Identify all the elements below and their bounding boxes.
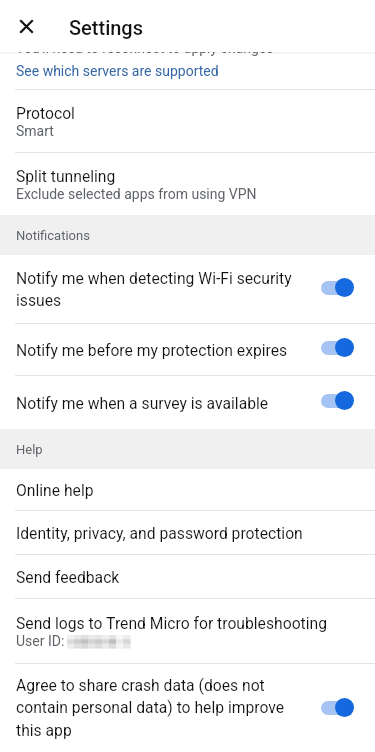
staticText: Send logs to Trend Micro for troubleshoo… (16, 614, 327, 632)
staticText: Send feedback (16, 568, 120, 586)
staticText: Settings (69, 16, 144, 39)
button[interactable]: Online help (0, 469, 375, 510)
button[interactable]: Close (2, 2, 50, 50)
staticText: Identity, privacy, and password protecti… (16, 524, 303, 542)
staticText: Online help (16, 481, 94, 499)
staticText: Split tunneling (16, 167, 116, 185)
button[interactable]: Protocol (0, 90, 375, 152)
staticText: Notify me when a survey is available (16, 394, 306, 412)
button[interactable]: Agree to share crash data (does not cont… (0, 664, 375, 752)
staticText: Exclude selected apps from using VPN (16, 186, 257, 202)
button[interactable]: Notify me before my protection expires (0, 324, 375, 375)
staticText: User ID: (16, 633, 65, 649)
staticText: Smart (16, 123, 54, 139)
button[interactable]: You'll need to reconnect to apply change… (0, 40, 375, 79)
button[interactable]: Send feedback (0, 555, 375, 598)
staticText: Notify me before my protection expires (16, 341, 306, 359)
button[interactable]: Split tunneling (0, 153, 375, 215)
button[interactable]: Identity, privacy, and password protecti… (0, 511, 375, 554)
button[interactable]: Notify me when detecting Wi-Fi security … (0, 255, 375, 323)
staticText: Notifications (16, 228, 90, 243)
staticText: You'll need to reconnect to apply change… (16, 40, 274, 56)
staticText: See which servers are supported (16, 63, 219, 79)
button[interactable]: Notify me when a survey is available (0, 376, 375, 429)
staticText: Agree to share crash data (does not cont… (16, 676, 306, 740)
button[interactable]: Send logs to Trend Micro for troubleshoo… (0, 599, 375, 663)
staticText: Help (16, 442, 43, 457)
staticText: Notify me when detecting Wi-Fi security … (16, 269, 306, 310)
staticText: Protocol (16, 104, 75, 122)
